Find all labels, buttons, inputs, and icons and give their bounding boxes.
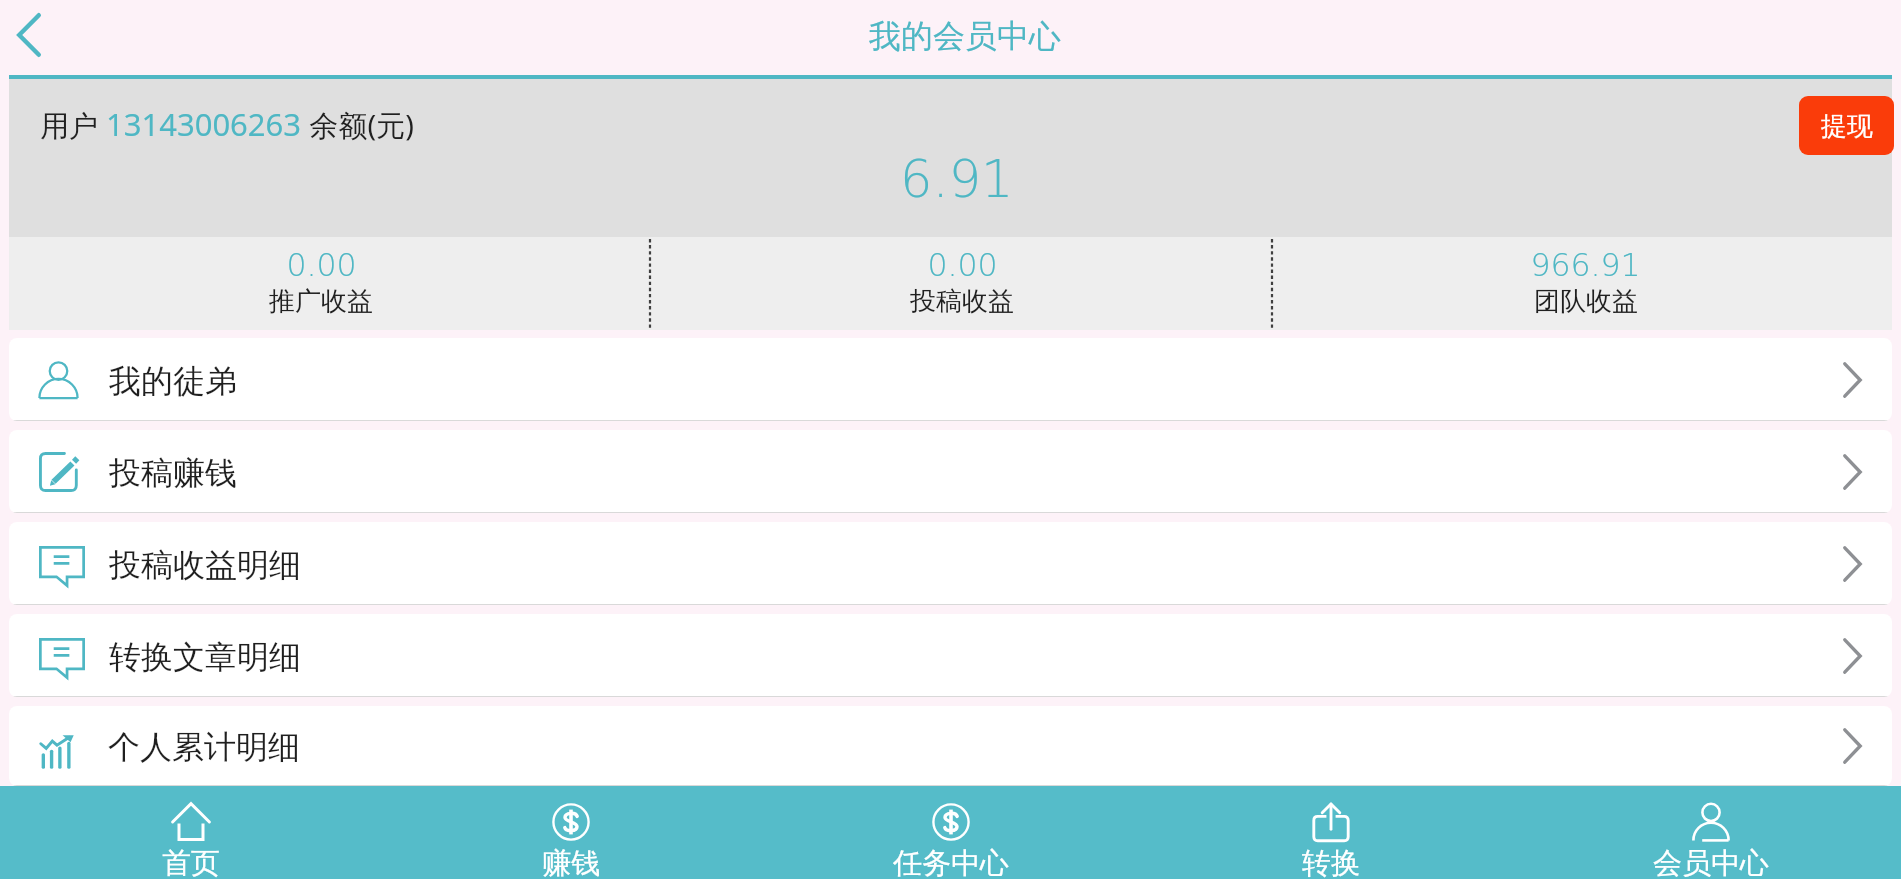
button[interactable]: 转换文章明细 [9,614,1892,697]
staticText: 任务中心 [893,845,1009,879]
staticText: 6.91 [900,150,1014,209]
staticText: 推广收益 [269,285,373,318]
staticText: 投稿收益 [910,285,1014,318]
staticText: 转换文章明细 [109,637,301,677]
staticText: 个人累计明细 [108,727,300,767]
button[interactable]: Back [0,0,62,75]
button[interactable]: 会员中心 [1521,786,1901,879]
staticText: 赚钱 [542,845,600,879]
staticText: 首页 [162,845,220,879]
button[interactable]: 我的徒弟 [9,338,1892,421]
staticText: 会员中心 [1653,845,1769,879]
staticText: 余额(元) [302,105,414,145]
button[interactable]: 赚钱 [381,786,761,879]
staticText: 966.91 [1530,247,1641,284]
button[interactable]: 投稿赚钱 [9,430,1892,513]
button[interactable]: 提现 [1799,96,1894,155]
staticText: 转换 [1302,845,1360,879]
staticText: 团队收益 [1534,285,1638,318]
staticText: 0.00 [286,247,357,284]
button[interactable]: 966.91 [1273,237,1892,330]
staticText: 提现 [1821,110,1873,143]
staticText: 投稿赚钱 [109,453,237,493]
staticText: 我的会员中心 [869,16,1061,56]
button[interactable]: 首页 [0,786,381,879]
button[interactable]: 投稿收益明细 [9,522,1892,605]
button[interactable]: 个人累计明细 [9,706,1892,786]
button[interactable]: 任务中心 [761,786,1141,879]
staticText: 我的徒弟 [109,361,237,401]
staticText: 13143006263 [106,103,302,145]
button[interactable]: 0.00 [9,237,649,330]
button[interactable]: 0.00 [651,237,1271,330]
staticText: 用户 [40,105,106,145]
button[interactable]: 转换 [1141,786,1521,879]
staticText: 0.00 [927,247,998,284]
staticText: 投稿收益明细 [109,545,301,585]
